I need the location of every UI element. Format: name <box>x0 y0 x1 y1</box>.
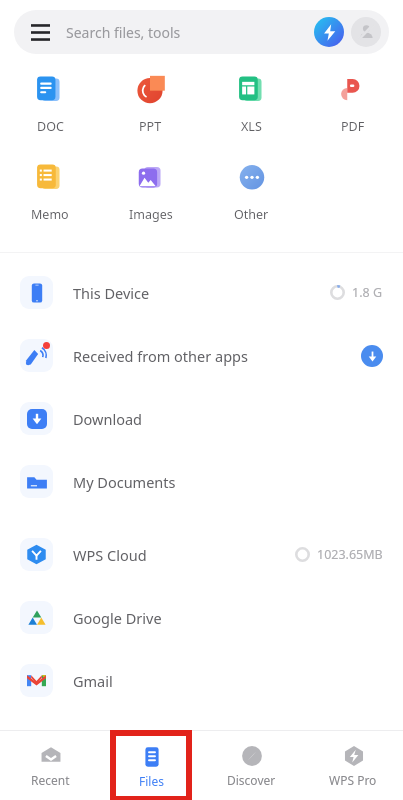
staticText: Download <box>73 409 142 429</box>
staticText: This Device <box>73 283 150 303</box>
button[interactable]: Menu <box>28 20 52 44</box>
button[interactable]: PPT <box>100 68 201 138</box>
button[interactable]: WPS Cloud <box>0 523 403 586</box>
staticText: DOC <box>37 118 64 135</box>
button[interactable]: Files <box>113 733 189 799</box>
staticText: Google Drive <box>73 608 162 628</box>
button[interactable]: Menu <box>14 10 389 54</box>
button[interactable]: Download all <box>361 345 383 367</box>
button[interactable]: Received from other apps <box>0 324 403 387</box>
staticText: Images <box>129 206 173 223</box>
staticText: My Documents <box>73 472 176 492</box>
button[interactable]: Download <box>0 387 403 450</box>
staticText: Files <box>139 773 164 789</box>
button[interactable]: Gmail <box>0 649 403 712</box>
staticText: Other <box>234 206 269 223</box>
staticText: Recent <box>31 772 70 788</box>
button[interactable]: PDF <box>302 68 403 138</box>
button[interactable]: Google Drive <box>0 586 403 649</box>
button[interactable]: Memo <box>0 156 100 226</box>
staticText: WPS Cloud <box>73 545 147 565</box>
button[interactable]: Images <box>100 156 201 226</box>
staticText: XLS <box>241 118 262 135</box>
staticText: Search files, tools <box>66 23 181 42</box>
button[interactable]: DOC <box>0 68 100 138</box>
staticText: 1023.65MB <box>317 546 383 563</box>
button[interactable]: My Documents <box>0 450 403 513</box>
button[interactable]: This Device <box>0 261 403 324</box>
button[interactable]: Other <box>201 156 302 226</box>
staticText: Memo <box>31 206 69 223</box>
staticText: Received from other apps <box>73 346 248 366</box>
button[interactable]: Account <box>351 17 381 47</box>
button[interactable]: WPS Pro <box>302 731 403 800</box>
staticText: PDF <box>341 118 365 135</box>
button[interactable]: XLS <box>201 68 302 138</box>
staticText: Discover <box>227 772 276 788</box>
staticText: 1.8 G <box>352 284 383 301</box>
staticText: WPS Pro <box>329 772 377 788</box>
button[interactable]: Discover <box>201 731 302 800</box>
button[interactable]: Recent <box>0 731 100 800</box>
button[interactable]: AI assistant <box>314 17 344 47</box>
staticText: Gmail <box>73 671 113 691</box>
staticText: PPT <box>139 118 162 135</box>
